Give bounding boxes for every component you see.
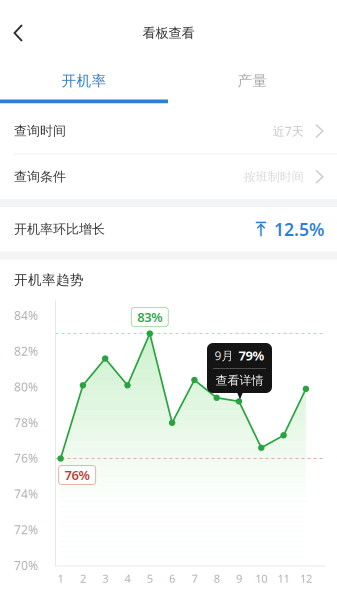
staticText: 8 bbox=[214, 571, 220, 586]
staticText: 80% bbox=[14, 379, 38, 395]
staticText: 查看详情 bbox=[215, 373, 263, 388]
staticText: 72% bbox=[14, 521, 38, 538]
button[interactable]: 返回 bbox=[0, 9, 32, 57]
staticText: 开机率趋势 bbox=[14, 271, 84, 288]
staticText: 84% bbox=[14, 307, 38, 323]
staticText: 近7天 bbox=[273, 123, 304, 139]
staticText: 76% bbox=[65, 466, 90, 484]
staticText: 7 bbox=[191, 571, 197, 586]
staticText: 5 bbox=[147, 571, 153, 586]
staticText: 12.5% bbox=[274, 217, 324, 241]
staticText: 查询时间 bbox=[14, 123, 66, 139]
staticText: 9月 bbox=[214, 347, 233, 364]
button[interactable]: 产量 bbox=[168, 66, 337, 96]
staticText: 78% bbox=[14, 414, 38, 431]
staticText: 1 bbox=[58, 571, 64, 586]
staticText: 82% bbox=[14, 343, 38, 359]
staticText: 10 bbox=[255, 571, 267, 586]
staticText: 开机率环比增长 bbox=[14, 221, 105, 237]
staticText: 开机率 bbox=[61, 72, 106, 90]
staticText: 11 bbox=[278, 571, 290, 586]
button[interactable]: 查看详情 bbox=[207, 368, 272, 393]
staticText: 2 bbox=[80, 571, 86, 586]
staticText: 按班制时间 bbox=[244, 169, 304, 184]
staticText: 4 bbox=[124, 571, 130, 586]
staticText: 查询条件 bbox=[14, 169, 66, 185]
staticText: 70% bbox=[14, 557, 38, 573]
staticText: 3 bbox=[102, 571, 108, 586]
staticText: 产量 bbox=[237, 72, 267, 90]
staticText: 79% bbox=[238, 347, 264, 364]
button[interactable]: 查询条件 bbox=[0, 154, 337, 199]
staticText: 6 bbox=[169, 571, 175, 586]
button[interactable]: 查询时间 bbox=[0, 108, 337, 153]
staticText: 76% bbox=[14, 450, 38, 466]
staticText: 9 bbox=[236, 571, 242, 586]
staticText: 74% bbox=[14, 486, 38, 502]
staticText: 看板查看 bbox=[142, 25, 194, 41]
staticText: 83% bbox=[137, 308, 162, 326]
staticText: 12 bbox=[300, 571, 312, 586]
button[interactable]: 开机率 bbox=[0, 66, 168, 96]
